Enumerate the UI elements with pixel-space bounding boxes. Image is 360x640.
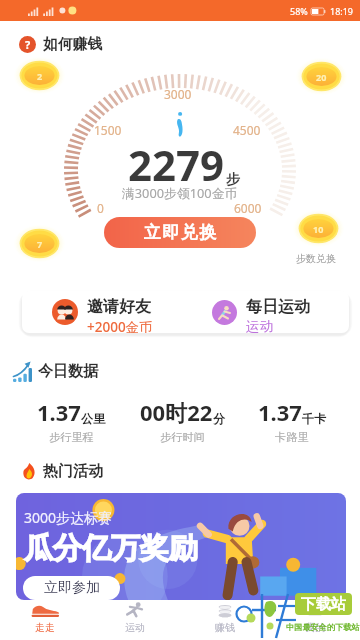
staticText: 分: [213, 411, 225, 426]
staticText: 3000步达标赛: [24, 508, 113, 527]
staticText: 7: [37, 238, 43, 250]
staticText: 6000: [234, 200, 262, 216]
staticText: 邀请好友: [87, 297, 151, 317]
staticText: 公里: [81, 411, 105, 426]
staticText: 0: [97, 200, 104, 216]
button[interactable]: ?: [19, 35, 103, 54]
staticText: 1.37: [37, 397, 81, 427]
button[interactable]: 我的: [285, 602, 345, 640]
button[interactable]: 赚钱: [195, 602, 255, 640]
staticText: 步: [226, 171, 240, 189]
staticText: 1.37: [258, 397, 302, 427]
button[interactable]: 邀请好友: [22, 291, 185, 333]
button[interactable]: 20: [296, 58, 347, 95]
staticText: 步行时间: [160, 430, 205, 444]
staticText: 运动: [246, 318, 273, 333]
staticText: 18:19: [330, 5, 354, 17]
staticText: 4500: [233, 122, 261, 138]
staticText: +2000金币: [87, 318, 153, 333]
button[interactable]: 走走: [15, 602, 75, 640]
staticText: 运动: [125, 621, 145, 634]
staticText: 立即兑换: [143, 222, 217, 243]
button[interactable]: 每日运动: [185, 291, 349, 333]
staticText: 每日运动: [246, 297, 310, 317]
staticText: 步数兑换: [296, 252, 336, 265]
button[interactable]: 3000步达标赛: [16, 493, 346, 600]
staticText: 瓜分亿万奖励: [24, 530, 198, 567]
staticText: 满3000步领100金币: [122, 184, 238, 201]
staticText: 赚钱: [215, 621, 235, 634]
staticText: 步行里程: [49, 430, 94, 444]
staticText: 下载站: [301, 595, 346, 614]
staticText: 20: [316, 71, 327, 83]
staticText: ?: [25, 37, 31, 52]
staticText: 立即参加: [44, 579, 100, 597]
button[interactable]: 7: [14, 225, 65, 262]
staticText: 1500: [94, 122, 122, 138]
button[interactable]: 2: [14, 57, 65, 94]
staticText: 00时22: [140, 397, 213, 427]
staticText: 中国最安全的下载站: [286, 622, 360, 632]
button[interactable]: 10: [293, 210, 344, 247]
staticText: 卡路里: [275, 430, 309, 444]
staticText: 2279: [128, 136, 225, 193]
staticText: 3000: [164, 86, 192, 102]
staticText: 热门活动: [43, 462, 103, 481]
staticText: 走走: [35, 621, 55, 634]
staticText: 我的: [305, 621, 325, 634]
staticText: 10: [313, 223, 324, 235]
button[interactable]: 立即兑换: [104, 217, 256, 248]
button[interactable]: 立即参加: [23, 576, 120, 600]
staticText: 如何赚钱: [43, 35, 103, 54]
button[interactable]: 运动: [105, 602, 165, 640]
staticText: 今日数据: [38, 362, 98, 381]
staticText: 2: [37, 70, 43, 82]
staticText: 58%: [290, 5, 308, 17]
staticText: 千卡: [302, 411, 326, 426]
